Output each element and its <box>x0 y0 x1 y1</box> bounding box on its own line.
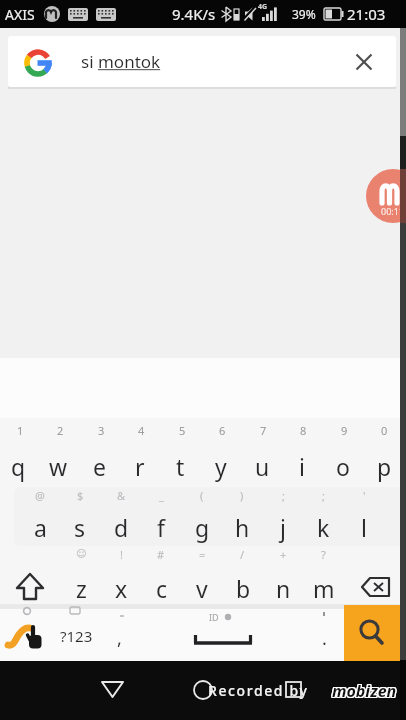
staticText: mobizen <box>333 681 398 703</box>
button[interactable]: d <box>101 507 141 547</box>
button[interactable] <box>273 671 315 709</box>
button[interactable]: b <box>223 568 263 608</box>
button[interactable]: 6 <box>202 420 242 440</box>
staticText: mobizen <box>332 679 397 701</box>
staticText: 6 <box>219 423 226 438</box>
button[interactable]: $ <box>60 485 100 505</box>
button[interactable]: ; <box>263 485 303 505</box>
button[interactable]: 7 <box>243 420 283 440</box>
button[interactable] <box>10 568 50 608</box>
button[interactable]: h <box>222 507 262 547</box>
button[interactable]: q <box>0 446 38 486</box>
button[interactable]: t <box>160 446 200 486</box>
button[interactable]: ?123 <box>51 616 101 656</box>
button[interactable]: 3 <box>81 420 121 440</box>
button[interactable]: = <box>182 544 222 564</box>
staticText: o <box>336 451 350 482</box>
staticText: 2 <box>57 423 64 438</box>
button[interactable]: ! <box>101 544 141 564</box>
button[interactable]: ) <box>222 485 262 505</box>
staticText: . <box>322 626 327 651</box>
button[interactable]: v <box>182 568 222 608</box>
button[interactable]: ( <box>182 485 222 505</box>
staticText: 7 <box>260 423 267 438</box>
button[interactable]: 4 <box>121 420 161 440</box>
button[interactable]: _ <box>141 485 181 505</box>
staticText: i <box>299 451 305 482</box>
button[interactable]: y <box>201 446 241 486</box>
button[interactable]: 9 <box>324 420 364 440</box>
button[interactable]: & <box>101 485 141 505</box>
button[interactable]: ☺ <box>61 544 101 564</box>
staticText: 00:11 <box>381 205 405 217</box>
button[interactable] <box>92 671 134 709</box>
staticText: 4G <box>258 2 268 12</box>
button[interactable]: . <box>304 618 344 658</box>
staticText: mobizen <box>331 680 396 702</box>
button[interactable]: e <box>79 446 119 486</box>
button[interactable] <box>344 605 400 661</box>
button[interactable]: c <box>142 568 182 608</box>
staticText: ; <box>322 488 325 503</box>
button[interactable]: m <box>304 568 344 608</box>
button[interactable]: j <box>263 507 303 547</box>
staticText: k <box>317 512 330 543</box>
staticText: & <box>117 488 126 503</box>
staticText: ' <box>363 488 366 503</box>
button[interactable]: x <box>101 568 141 608</box>
staticText: mobizen <box>333 680 398 702</box>
staticText: mobizen <box>332 681 397 703</box>
button[interactable]: 5 <box>162 420 202 440</box>
button[interactable]: ? <box>303 544 343 564</box>
button[interactable]: n <box>263 568 303 608</box>
button[interactable]: p <box>364 446 404 486</box>
staticText: y <box>215 451 227 482</box>
button[interactable]: l <box>344 507 384 547</box>
button[interactable]: o <box>323 446 363 486</box>
button[interactable]: ; <box>303 485 343 505</box>
staticText: ! <box>120 547 123 562</box>
staticText: = <box>199 547 206 562</box>
button[interactable]: r <box>120 446 160 486</box>
button[interactable]: 8 <box>283 420 323 440</box>
staticText: a <box>34 512 47 543</box>
button[interactable]: / <box>222 544 262 564</box>
staticText: $ <box>77 488 84 503</box>
button[interactable] <box>160 612 290 657</box>
button[interactable]: 1 <box>0 420 40 440</box>
button[interactable]: a <box>20 507 60 547</box>
button[interactable]: u <box>242 446 282 486</box>
button[interactable]: , <box>99 618 139 658</box>
button[interactable] <box>183 671 225 709</box>
button[interactable]: # <box>141 544 181 564</box>
button[interactable]: g <box>182 507 222 547</box>
button[interactable]: 00:11 <box>366 169 406 223</box>
button[interactable]: z <box>61 568 101 608</box>
staticText: mobizen <box>331 679 396 701</box>
staticText: ; <box>282 488 285 503</box>
staticText: 0 <box>381 423 388 438</box>
staticText: 4 <box>138 423 145 438</box>
button[interactable]: + <box>263 544 303 564</box>
staticText: 3 <box>98 423 105 438</box>
button[interactable]: f <box>141 507 181 547</box>
button[interactable]: 0 <box>364 420 404 440</box>
button[interactable]: 2 <box>40 420 80 440</box>
staticText: AXIS <box>5 5 35 24</box>
staticText: q <box>11 451 26 482</box>
staticText: s <box>74 512 86 543</box>
button[interactable]: k <box>303 507 343 547</box>
button[interactable]: @ <box>20 485 60 505</box>
button[interactable]: i <box>282 446 322 486</box>
button[interactable]: si montok <box>8 36 396 87</box>
button[interactable] <box>355 568 395 608</box>
button[interactable]: s <box>60 507 100 547</box>
button[interactable]: w <box>38 446 78 486</box>
staticText: n <box>276 573 291 604</box>
staticText: m <box>313 573 335 604</box>
button[interactable] <box>348 46 380 78</box>
staticText: h <box>235 512 250 543</box>
staticText: , <box>117 626 122 651</box>
staticText: x <box>115 573 128 604</box>
